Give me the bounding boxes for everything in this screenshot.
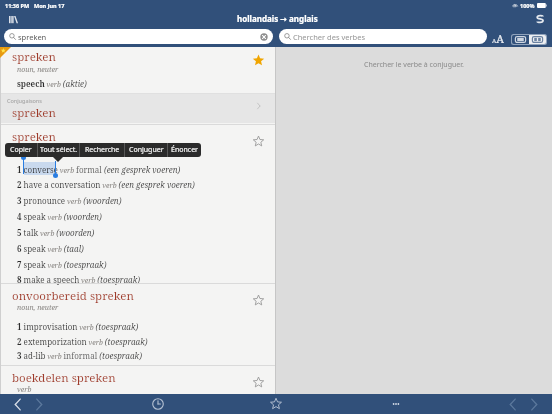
button[interactable]: onvoorbereid spreken: [0, 283, 275, 365]
staticText: speech verb (aktie): [17, 78, 87, 89]
staticText: 7 speak verb (toespraak): [17, 259, 107, 270]
staticText: 5 talk verb (woorden): [17, 227, 95, 238]
staticText: 11:36 PM: [5, 2, 30, 9]
staticText: 1 converse verb formal (een gesprek voer…: [17, 164, 181, 175]
staticText: 1 improvisation verb (toespraak): [17, 321, 139, 332]
staticText: AA: [492, 31, 504, 45]
button[interactable]: Recherche: [80, 143, 124, 157]
staticText: 4 speak verb (woorden): [17, 211, 102, 222]
button[interactable]: Split pane: [529, 35, 546, 44]
staticText: spreken: [12, 49, 56, 65]
button[interactable]: Single pane: [512, 35, 529, 44]
button[interactable]: [0, 47, 275, 94]
staticText: 100%: [520, 2, 535, 9]
staticText: verb: [17, 144, 32, 154]
staticText: 3 pronounce verb (woorden): [17, 195, 122, 206]
button[interactable]: Énoncer: [168, 143, 201, 157]
staticText: 3 ad-lib verb informal (toespraak): [17, 350, 142, 361]
button[interactable]: Bookmark entry: [252, 54, 265, 67]
button[interactable]: spreken: [0, 125, 275, 282]
button[interactable]: Back: [9, 396, 26, 413]
staticText: boekdelen spreken: [12, 370, 116, 386]
button[interactable]: Bookmark entry: [252, 294, 265, 307]
button[interactable]: Copier: [5, 143, 37, 157]
staticText: 2 have a conversation verb (een gesprek …: [17, 179, 195, 190]
staticText: Recherche: [85, 145, 120, 155]
staticText: 2 extemporization verb (toespraak): [17, 336, 148, 347]
button[interactable]: Bookmark entry: [252, 135, 265, 148]
button[interactable]: Tout sélect.: [38, 143, 79, 157]
button[interactable]: Library: [6, 12, 20, 26]
button[interactable]: Chercher des verbes: [279, 29, 487, 44]
staticText: hollandais → anglais: [237, 13, 318, 24]
staticText: Mon Jun 17: [34, 2, 65, 9]
staticText: 6 speak verb (taal): [17, 243, 84, 254]
staticText: noun, neuter: [17, 303, 59, 313]
button[interactable]: Previous result: [504, 396, 521, 413]
staticText: noun, neuter: [17, 65, 59, 75]
staticText: spreken: [18, 32, 47, 42]
button[interactable]: Share: [533, 12, 547, 26]
button[interactable]: Bookmark entry: [252, 376, 265, 389]
staticText: Tout sélect.: [40, 145, 78, 155]
button[interactable]: Conjugaisons: [0, 94, 275, 123]
staticText: Copier: [10, 145, 32, 155]
staticText: verb: [17, 385, 32, 395]
button[interactable]: Next result: [526, 396, 543, 413]
button[interactable]: Conjuguer: [125, 143, 167, 157]
button[interactable]: boekdelen spreken: [0, 366, 275, 396]
staticText: 8 make a speech verb (toespraak): [17, 274, 141, 285]
staticText: spreken: [12, 105, 56, 121]
button[interactable]: Forward: [31, 396, 48, 413]
staticText: Chercher des verbes: [293, 32, 366, 42]
staticText: Conjuguer: [129, 145, 164, 155]
staticText: Chercher le verbe à conjuguer.: [364, 60, 464, 70]
button[interactable]: Favorites: [268, 396, 284, 412]
staticText: onvoorbereid spreken: [12, 288, 134, 304]
button[interactable]: spreken: [4, 29, 273, 44]
staticText: Énoncer: [171, 145, 198, 155]
button[interactable]: Text size: [492, 30, 507, 44]
button[interactable]: History: [150, 396, 166, 412]
button[interactable]: More: [388, 396, 404, 412]
staticText: Conjugaisons: [7, 97, 42, 104]
staticText: spreken: [12, 129, 56, 145]
